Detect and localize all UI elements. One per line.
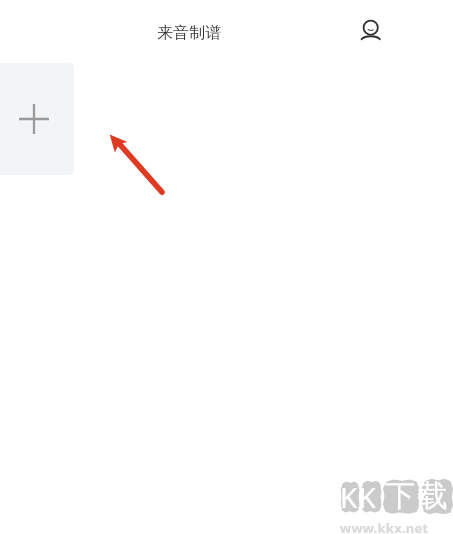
button[interactable]: Account (352, 11, 388, 47)
button[interactable]: Create new score (0, 63, 74, 175)
staticText: www.kkx.net (340, 519, 429, 534)
staticText: 下载 (384, 477, 449, 515)
staticText: KK (340, 478, 378, 516)
staticText: 来音制谱 (157, 23, 221, 43)
